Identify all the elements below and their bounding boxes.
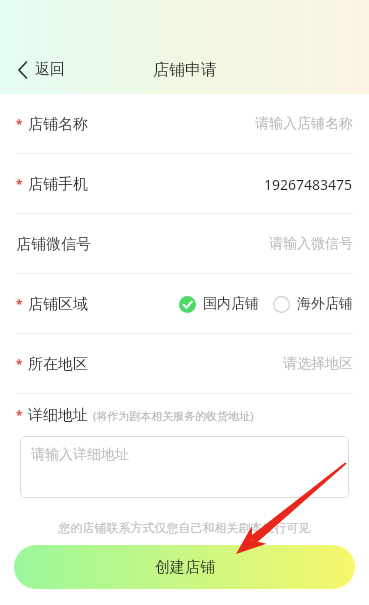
staticText: * [16, 116, 23, 132]
staticText: 您的店铺联系方式仅您自己和相关剧本发行可见 [0, 520, 369, 535]
button[interactable]: 国内店铺 [179, 291, 259, 317]
button[interactable]: * [0, 154, 369, 214]
button[interactable]: 请输入详细地址 [20, 436, 349, 498]
staticText: 店铺区域 [28, 295, 88, 314]
staticText: 请输入店铺名称 [255, 115, 353, 133]
button[interactable]: * [0, 274, 369, 334]
staticText: 详细地址 [28, 406, 88, 425]
staticText: * [16, 407, 23, 423]
staticText: 店铺名称 [28, 115, 88, 134]
staticText: 店铺申请 [153, 60, 217, 80]
staticText: 店铺微信号 [16, 235, 91, 254]
staticText: 请选择地区 [283, 355, 353, 373]
staticText: 请输入微信号 [269, 235, 353, 253]
staticText: 创建店铺 [155, 558, 215, 577]
staticText: 店铺手机 [28, 175, 88, 194]
staticText: 海外店铺 [297, 295, 353, 313]
button[interactable]: * [0, 94, 369, 154]
staticText: 请输入详细地址 [31, 446, 129, 464]
staticText: * [16, 296, 23, 312]
button[interactable]: 店铺微信号 [0, 214, 369, 274]
button[interactable]: 创建店铺 [14, 545, 355, 589]
button[interactable]: 海外店铺 [273, 291, 353, 317]
staticText: * [16, 176, 23, 192]
staticText: 19267483475 [264, 175, 353, 194]
button[interactable]: 返回 [14, 56, 69, 83]
staticText: * [16, 356, 23, 372]
staticText: 国内店铺 [203, 295, 259, 313]
staticText: 所在地区 [28, 355, 88, 374]
button[interactable]: * [0, 334, 369, 394]
staticText: (将作为剧本相关服务的收货地址) [93, 408, 254, 423]
staticText: 返回 [35, 60, 65, 79]
